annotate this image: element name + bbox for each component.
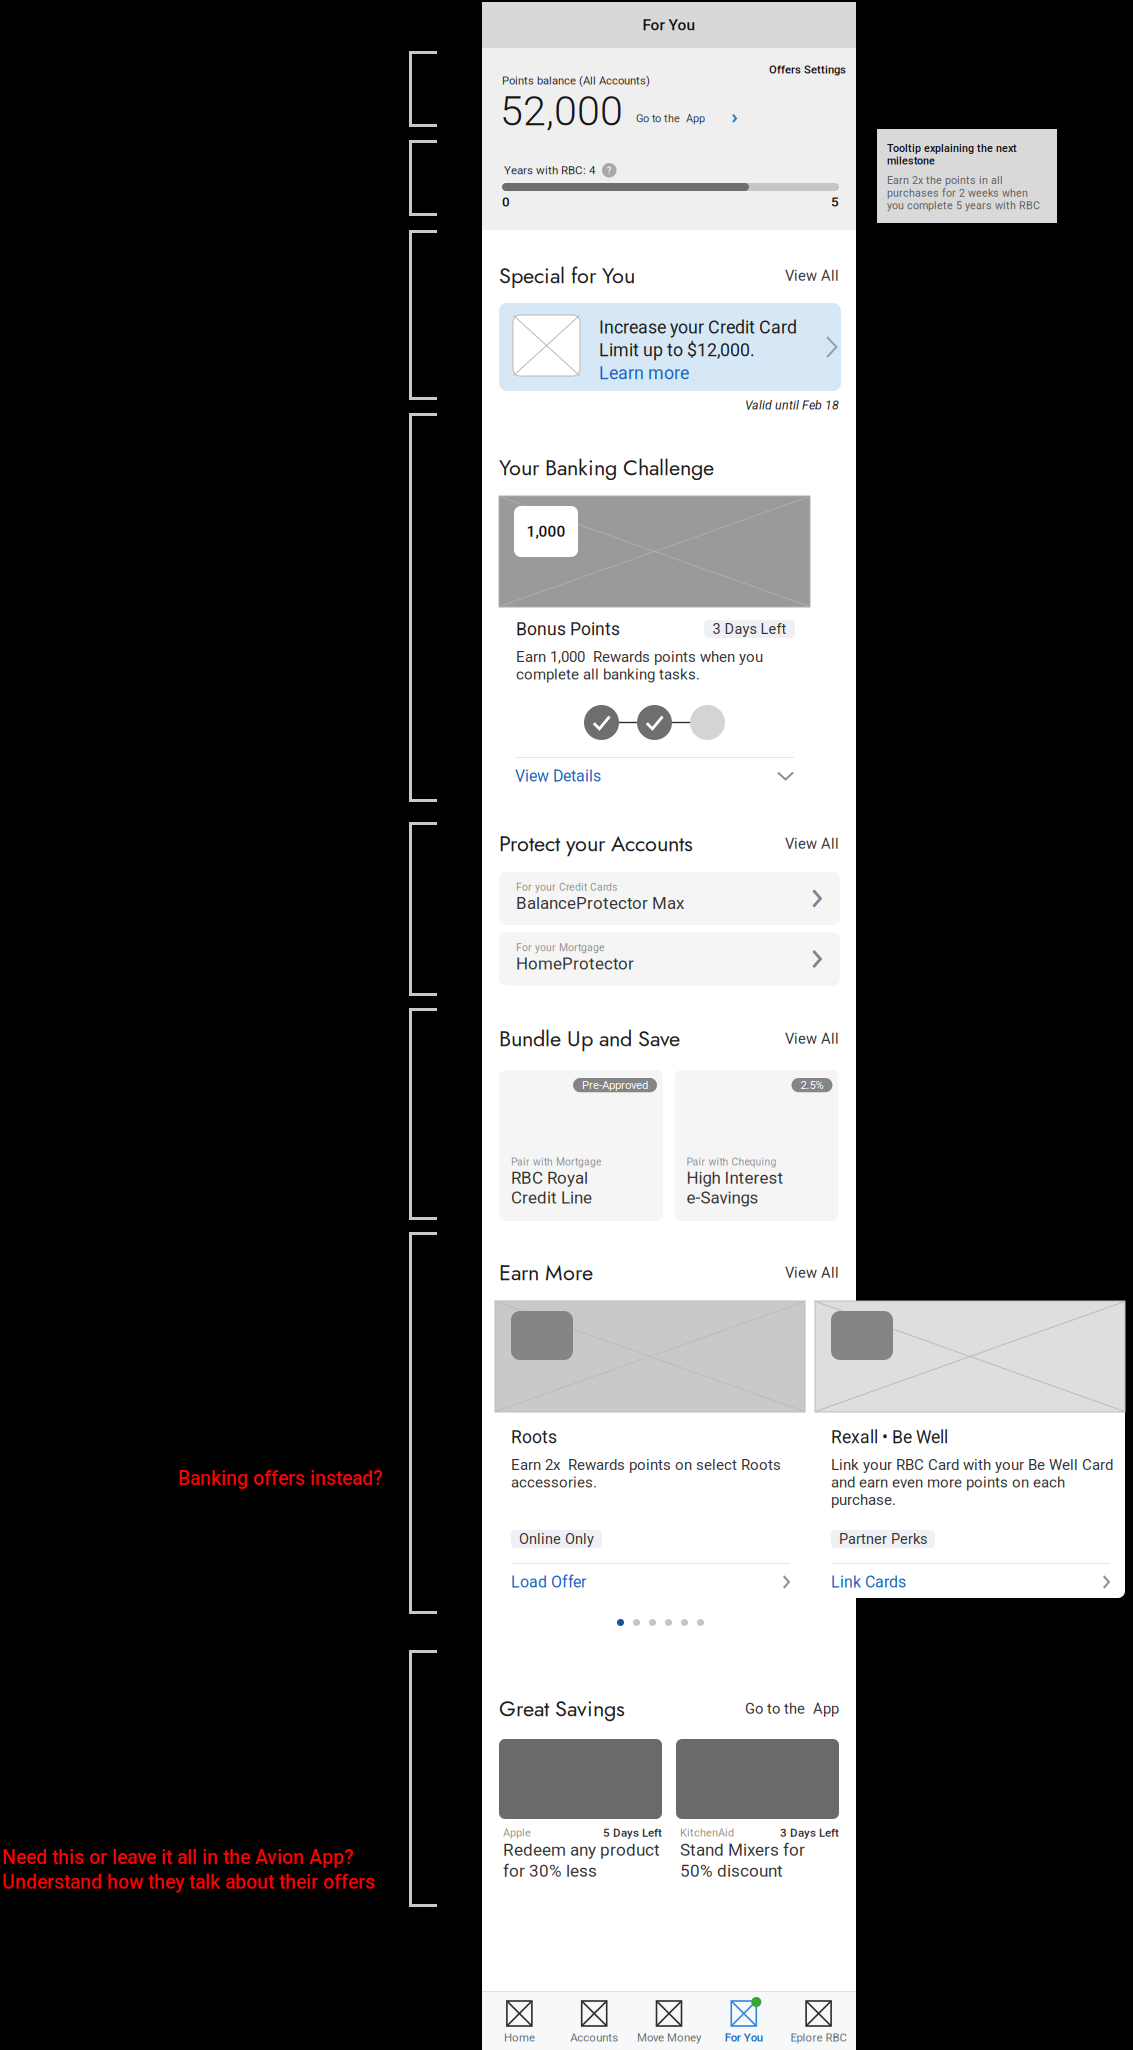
- staticText: and earn even more points on each: [831, 1474, 1065, 1491]
- button[interactable]: For your Credit Cards: [499, 872, 840, 925]
- staticText: complete all banking tasks.: [516, 666, 700, 683]
- button[interactable]: Pre-Approved: [499, 1070, 663, 1221]
- staticText: accessories.: [511, 1474, 597, 1491]
- staticText: High Interest: [686, 1168, 783, 1188]
- button[interactable]: View Details: [515, 758, 794, 794]
- staticText: Limit up to $12,000.: [599, 340, 755, 361]
- staticText: Increase your Credit Card: [599, 317, 797, 338]
- button[interactable]: KitchenAid: [676, 1739, 839, 1884]
- button[interactable]: View All: [785, 263, 839, 288]
- button[interactable]: Go to the App: [636, 112, 737, 125]
- staticText: Go to the App: [745, 1700, 839, 1717]
- staticText: Eplore RBC: [791, 2031, 847, 2044]
- staticText: Apple: [503, 1826, 531, 1839]
- staticText: Earn 2x Rewards points on select Roots: [511, 1456, 781, 1474]
- staticText: Rexall • Be Well: [831, 1427, 948, 1447]
- button[interactable]: Eplore RBC: [781, 2001, 856, 2044]
- button[interactable]: Move Money: [632, 2001, 706, 2044]
- staticText: For You: [725, 2031, 763, 2044]
- staticText: Pre-Approved: [582, 1078, 648, 1092]
- button[interactable]: Apple: [499, 1739, 662, 1884]
- staticText: For your Credit Cards: [516, 881, 617, 893]
- staticText: KitchenAid: [680, 1826, 734, 1839]
- staticText: Earn 2x the points in all: [887, 174, 1003, 187]
- button[interactable]: Accounts: [557, 2001, 632, 2044]
- staticText: 3 Days Left: [712, 620, 786, 637]
- staticText: ?: [607, 165, 612, 176]
- staticText: Learn more: [599, 363, 689, 383]
- staticText: Bonus Points: [516, 619, 620, 639]
- staticText: Link Cards: [831, 1573, 906, 1591]
- staticText: Your Banking Challenge: [499, 452, 714, 483]
- staticText: Offers Settings: [769, 63, 846, 76]
- staticText: View All: [785, 1264, 839, 1281]
- staticText: milestone: [887, 155, 935, 167]
- staticText: 5 Days Left: [603, 1826, 662, 1839]
- staticText: Move Money: [637, 2031, 701, 2044]
- staticText: Earn 1,000 Rewards points when you: [516, 648, 763, 666]
- staticText: Protect your Accounts: [499, 828, 693, 859]
- staticText: Redeem any product: [503, 1840, 660, 1860]
- staticText: Banking offers instead?: [178, 1467, 382, 1490]
- staticText: purchases for 2 weeks when: [887, 187, 1028, 199]
- staticText: Great Savings: [499, 1693, 625, 1724]
- staticText: Points balance (All Accounts): [502, 74, 650, 87]
- staticText: you complete 5 years with RBC: [887, 199, 1040, 212]
- staticText: Understand how they talk about their off…: [2, 1871, 375, 1893]
- staticText: HomeProtector: [516, 954, 634, 973]
- staticText: Pair with Mortgage: [511, 1156, 601, 1168]
- staticText: Special for You: [499, 260, 635, 291]
- button[interactable]: 2.5%: [674, 1070, 838, 1221]
- staticText: 3 Days Left: [780, 1826, 839, 1839]
- staticText: 52,000: [500, 87, 623, 135]
- staticText: View Details: [515, 767, 601, 785]
- staticText: BalanceProtector Max: [516, 893, 684, 913]
- staticText: View All: [785, 835, 839, 852]
- staticText: e-Savings: [686, 1188, 758, 1208]
- staticText: 50% discount: [680, 1861, 783, 1881]
- staticText: Online Only: [519, 1530, 594, 1547]
- staticText: View All: [785, 267, 839, 284]
- staticText: for 30% less: [503, 1861, 597, 1881]
- button[interactable]: For You: [706, 2001, 781, 2044]
- button[interactable]: Link Cards: [831, 1564, 1110, 1600]
- staticText: 2.5%: [800, 1078, 823, 1092]
- staticText: Bundle Up and Save: [499, 1023, 680, 1054]
- staticText: Valid until Feb 18: [745, 398, 839, 413]
- staticText: Link your RBC Card with your Be Well Car…: [831, 1456, 1113, 1474]
- button[interactable]: Offers Settings: [769, 63, 846, 76]
- staticText: purchase.: [831, 1491, 896, 1509]
- staticText: Tooltip explaining the next: [887, 142, 1017, 155]
- staticText: View All: [785, 1030, 839, 1047]
- staticText: Years with RBC: 4: [504, 163, 595, 177]
- staticText: Credit Line: [511, 1188, 592, 1208]
- staticText: Need this or leave it all in the Avion A…: [2, 1846, 353, 1869]
- staticText: 0: [502, 194, 510, 210]
- staticText: For You: [642, 16, 695, 34]
- staticText: Roots: [511, 1427, 557, 1447]
- staticText: 1,000: [526, 522, 565, 540]
- button[interactable]: Increase your Credit Card: [499, 303, 841, 391]
- staticText: Load Offer: [511, 1573, 586, 1591]
- button[interactable]: Go to the App: [745, 1696, 839, 1721]
- staticText: Go to the App: [636, 112, 705, 125]
- staticText: Pair with Chequing: [686, 1156, 776, 1168]
- staticText: RBC Royal: [511, 1168, 588, 1188]
- staticText: 5: [831, 194, 839, 210]
- button[interactable]: Load Offer: [511, 1564, 790, 1600]
- staticText: Accounts: [570, 2031, 618, 2044]
- button[interactable]: View All: [785, 1026, 839, 1051]
- staticText: Earn More: [499, 1257, 593, 1288]
- button[interactable]: View All: [785, 1260, 839, 1285]
- button[interactable]: Home: [482, 2001, 557, 2044]
- button[interactable]: For your Mortgage: [499, 932, 840, 985]
- staticText: Partner Perks: [839, 1530, 927, 1547]
- staticText: Home: [504, 2031, 535, 2044]
- button[interactable]: View All: [785, 831, 839, 856]
- staticText: Stand Mixers for: [680, 1840, 805, 1860]
- staticText: For your Mortgage: [516, 941, 605, 954]
